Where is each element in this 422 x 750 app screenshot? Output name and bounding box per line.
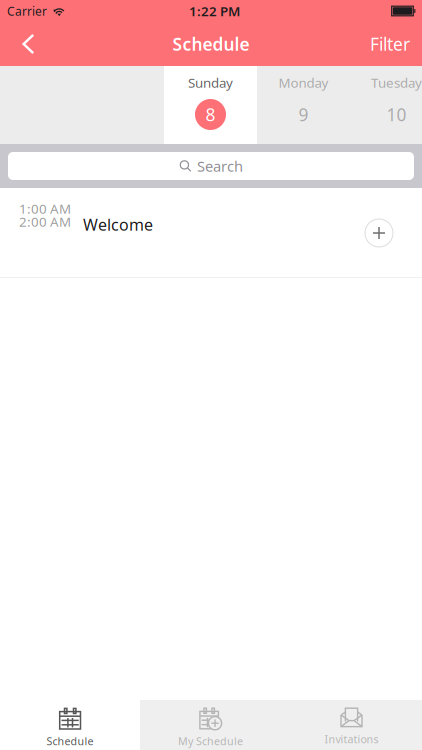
- button[interactable]: Monday: [257, 66, 350, 144]
- staticText: Sunday: [188, 74, 233, 91]
- button[interactable]: Schedule: [0, 700, 140, 750]
- button[interactable]: Add event: [357, 211, 401, 255]
- staticText: Welcome: [83, 214, 153, 235]
- staticText: Tuesday: [371, 74, 422, 91]
- button[interactable]: My Schedule: [140, 700, 281, 750]
- button[interactable]: Tuesday: [350, 66, 422, 144]
- staticText: Carrier: [7, 3, 47, 19]
- staticText: Schedule: [172, 32, 249, 55]
- staticText: 8: [205, 103, 215, 126]
- staticText: 1:22 PM: [189, 2, 240, 20]
- staticText: 1:00 AM: [19, 200, 71, 217]
- staticText: Invitations: [324, 732, 378, 746]
- staticText: 9: [298, 103, 308, 126]
- button[interactable]: Sunday: [164, 66, 257, 144]
- staticText: Search: [197, 156, 243, 176]
- staticText: My Schedule: [178, 734, 243, 748]
- button[interactable]: Filter: [356, 22, 422, 66]
- staticText: 10: [386, 103, 406, 126]
- button[interactable]: 1:00 AM: [0, 188, 422, 277]
- staticText: Schedule: [46, 734, 93, 748]
- button[interactable]: Back: [0, 22, 51, 66]
- staticText: Filter: [370, 32, 410, 55]
- staticText: 2:00 AM: [19, 213, 71, 230]
- button[interactable]: Invitations: [281, 700, 422, 750]
- staticText: Monday: [278, 74, 328, 91]
